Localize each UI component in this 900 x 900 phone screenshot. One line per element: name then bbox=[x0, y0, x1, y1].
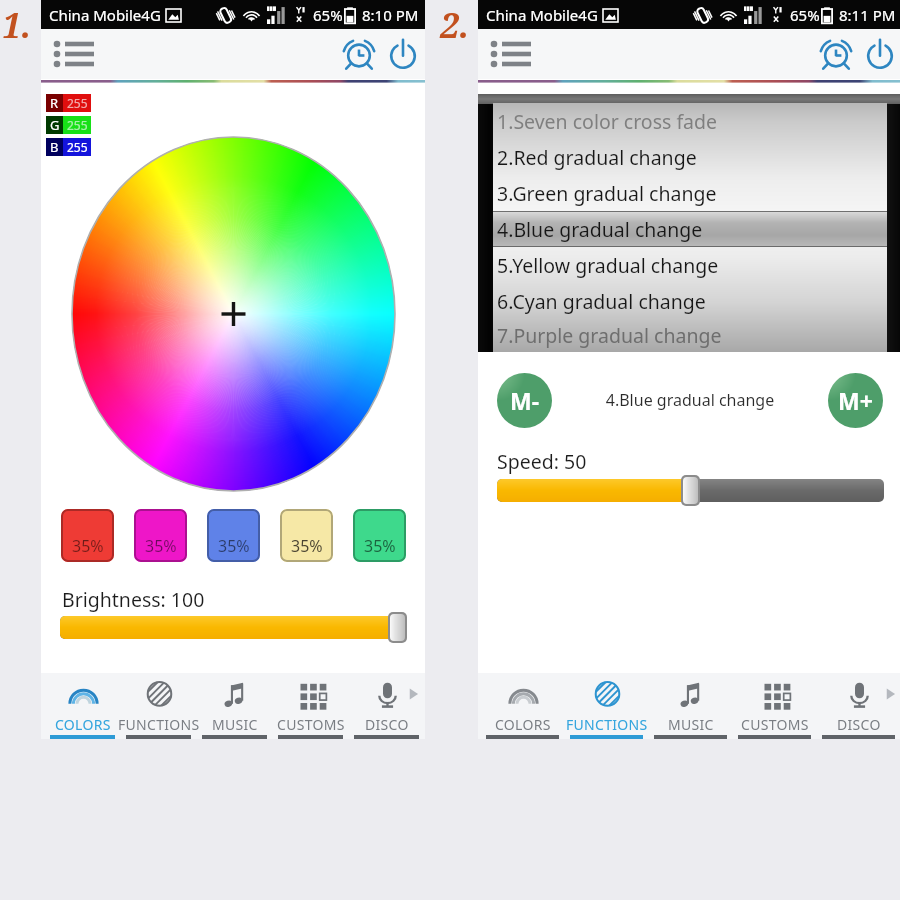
button[interactable]: 5.Yellow gradual change bbox=[493, 247, 887, 283]
button[interactable]: 35% bbox=[353, 509, 406, 562]
button[interactable]: Alarm bbox=[817, 35, 855, 73]
button[interactable]: More tabs bbox=[881, 685, 899, 703]
staticText: M- bbox=[510, 385, 540, 416]
staticText: DISCO bbox=[837, 715, 881, 734]
button[interactable]: 2.Red gradual change bbox=[493, 139, 887, 175]
staticText: 255 bbox=[67, 95, 88, 111]
button[interactable]: 35% bbox=[61, 509, 114, 562]
button[interactable]: CUSTOMS bbox=[273, 673, 349, 739]
button[interactable]: M- bbox=[497, 373, 552, 428]
staticText: 8:10 PM bbox=[362, 5, 419, 25]
button[interactable]: 35% bbox=[207, 509, 260, 562]
button[interactable]: DISCO bbox=[349, 673, 425, 739]
staticText: 3.Green gradual change bbox=[497, 180, 717, 207]
button[interactable]: 1.Seven color cross fade bbox=[493, 103, 887, 139]
staticText: FUNCTIONS bbox=[566, 715, 648, 734]
button[interactable]: Slider thumb bbox=[683, 477, 698, 504]
button[interactable]: 3.Green gradual change bbox=[493, 175, 887, 211]
button[interactable]: M+ bbox=[828, 373, 883, 428]
staticText: 2.Red gradual change bbox=[497, 144, 697, 171]
button[interactable]: More tabs bbox=[404, 685, 422, 703]
staticText: 5.Yellow gradual change bbox=[497, 252, 719, 279]
staticText: R bbox=[50, 94, 59, 112]
button[interactable]: COLORS bbox=[481, 673, 565, 739]
staticText: 255 bbox=[67, 117, 88, 133]
staticText: 1.Seven color cross fade bbox=[497, 108, 718, 135]
staticText: China Mobile4G bbox=[49, 5, 161, 25]
staticText: M+ bbox=[838, 385, 873, 416]
staticText: 35% bbox=[218, 535, 250, 557]
staticText: MUSIC bbox=[212, 715, 258, 734]
button[interactable]: CUSTOMS bbox=[733, 673, 817, 739]
staticText: COLORS bbox=[55, 715, 111, 734]
button[interactable]: FUNCTIONS bbox=[121, 673, 197, 739]
staticText: B bbox=[50, 138, 59, 156]
staticText: MUSIC bbox=[668, 715, 714, 734]
button[interactable]: MUSIC bbox=[197, 673, 273, 739]
staticText: 65% bbox=[790, 5, 820, 25]
button[interactable]: Power bbox=[384, 35, 422, 73]
staticText: FUNCTIONS bbox=[118, 715, 200, 734]
button[interactable]: FUNCTIONS bbox=[565, 673, 649, 739]
button[interactable]: 35% bbox=[280, 509, 333, 562]
staticText: 35% bbox=[72, 535, 104, 557]
button[interactable]: Power bbox=[861, 35, 899, 73]
button[interactable]: 35% bbox=[134, 509, 187, 562]
staticText: CUSTOMS bbox=[741, 715, 809, 734]
staticText: DISCO bbox=[365, 715, 409, 734]
button[interactable]: 7.Purple gradual change bbox=[493, 319, 887, 352]
staticText: 35% bbox=[291, 535, 323, 557]
staticText: 2. bbox=[440, 2, 470, 48]
staticText: 35% bbox=[145, 535, 177, 557]
staticText: Brightness: 100 bbox=[62, 586, 205, 613]
staticText: CUSTOMS bbox=[277, 715, 345, 734]
button[interactable]: 6.Cyan gradual change bbox=[493, 283, 887, 319]
staticText: 7.Purple gradual change bbox=[497, 322, 722, 349]
staticText: 4.Blue gradual change bbox=[478, 389, 900, 411]
button[interactable]: DISCO bbox=[817, 673, 900, 739]
staticText: G bbox=[50, 116, 60, 134]
staticText: 65% bbox=[313, 5, 343, 25]
button[interactable]: Alarm bbox=[340, 35, 378, 73]
staticText: COLORS bbox=[495, 715, 551, 734]
staticText: 1. bbox=[2, 2, 32, 48]
staticText: 4.Blue gradual change bbox=[497, 216, 703, 243]
staticText: 8:11 PM bbox=[839, 5, 896, 25]
button[interactable]: COLORS bbox=[45, 673, 121, 739]
staticText: 255 bbox=[67, 139, 88, 155]
button[interactable]: Menu bbox=[52, 34, 98, 74]
staticText: 35% bbox=[364, 535, 396, 557]
button[interactable]: MUSIC bbox=[649, 673, 733, 739]
button[interactable]: Menu bbox=[489, 34, 535, 74]
staticText: 6.Cyan gradual change bbox=[497, 288, 706, 315]
staticText: Speed: 50 bbox=[497, 448, 587, 475]
staticText: China Mobile4G bbox=[486, 5, 598, 25]
button[interactable]: Slider thumb bbox=[390, 614, 405, 641]
button[interactable]: 4.Blue gradual change bbox=[493, 211, 887, 247]
